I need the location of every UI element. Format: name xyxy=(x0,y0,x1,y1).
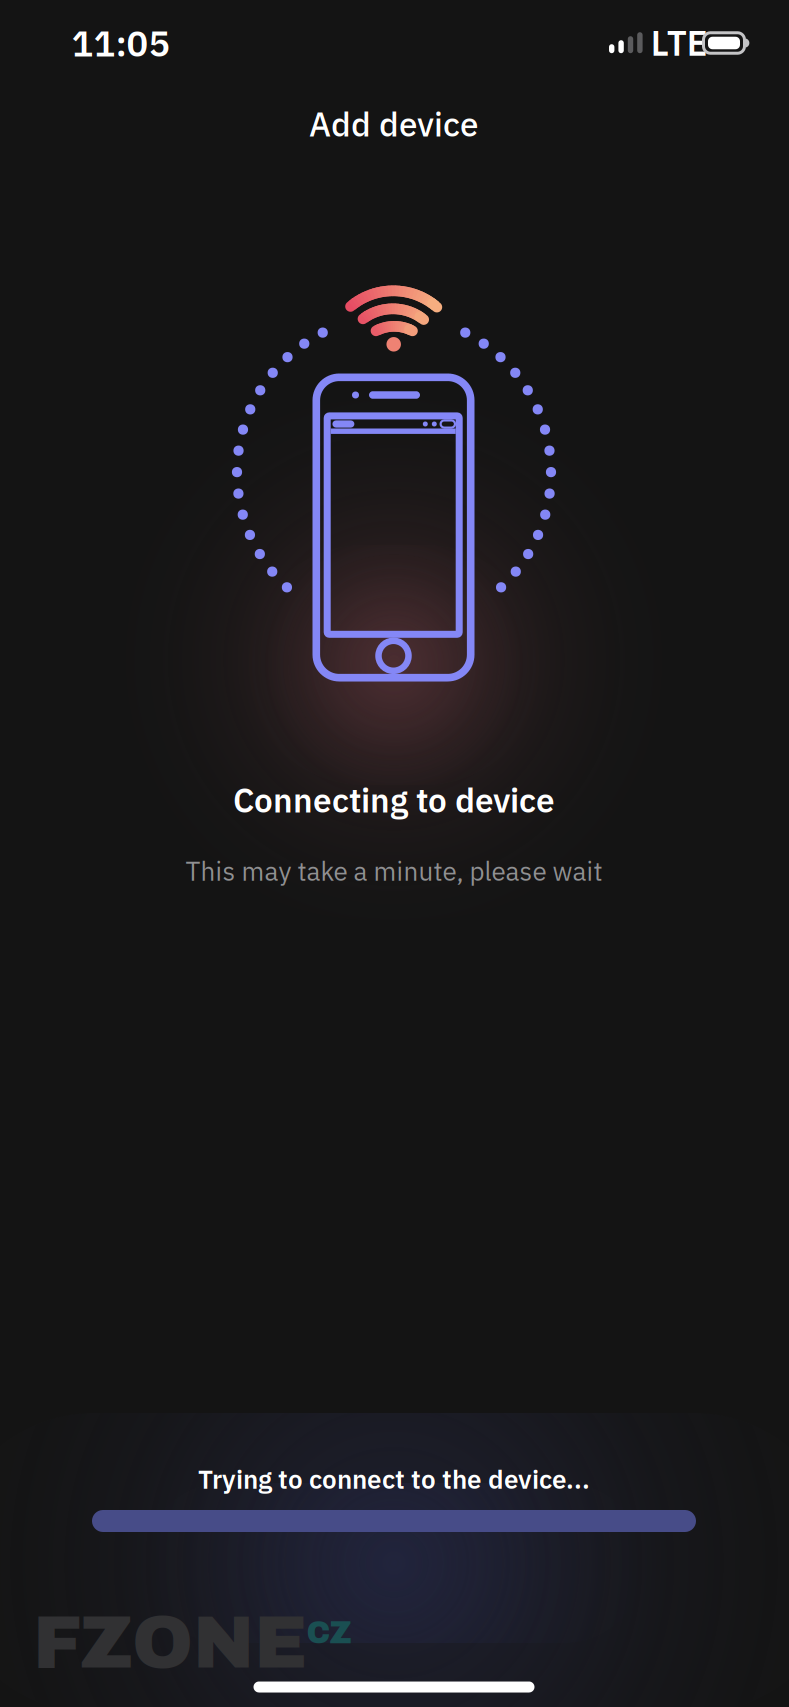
staticText: LTE xyxy=(651,20,708,65)
staticText: CZ xyxy=(306,1616,351,1650)
staticText: Add device xyxy=(309,102,479,146)
staticText: FZONE xyxy=(33,1603,307,1683)
staticText: This may take a minute, please wait xyxy=(185,854,602,888)
staticText: Trying to connect to the device... xyxy=(198,1462,590,1496)
staticText: Connecting to device xyxy=(233,778,555,822)
staticText: 11:05 xyxy=(71,20,170,66)
